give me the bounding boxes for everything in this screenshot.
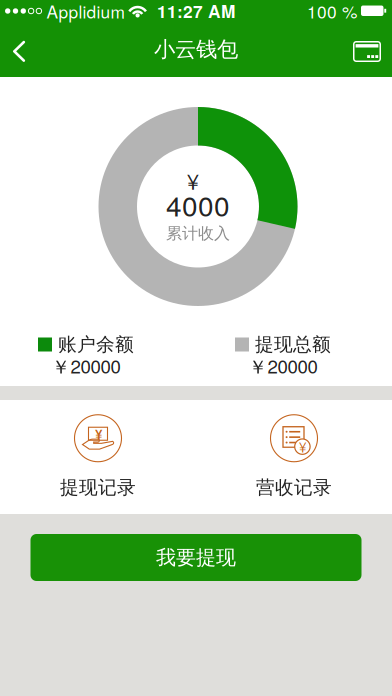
staticText: 账户余额 [58,333,134,356]
staticText: ￥20000 [248,352,317,379]
button[interactable]: 银行卡 [345,22,389,77]
staticText: ¥ [95,425,102,444]
button[interactable]: 返回 [0,22,38,77]
staticText: 小云钱包 [154,36,238,63]
staticText: Applidium [47,0,125,23]
staticText: 累计收入 [166,223,230,244]
staticText: 11:27 AM [157,0,235,23]
button[interactable]: 我要提现 [30,534,361,581]
button[interactable]: ¥ [0,400,196,514]
staticText: 提现记录 [60,476,136,499]
staticText: 提现总额 [255,333,331,356]
button[interactable]: ¥ [196,400,392,514]
staticText: 100 % [307,0,357,23]
staticText: ¥ [299,437,306,456]
staticText: ¥ [187,165,199,196]
staticText: ￥20000 [51,352,120,379]
staticText: 我要提现 [156,545,236,570]
staticText: 4000 [166,184,230,225]
staticText: 营收记录 [256,476,332,499]
